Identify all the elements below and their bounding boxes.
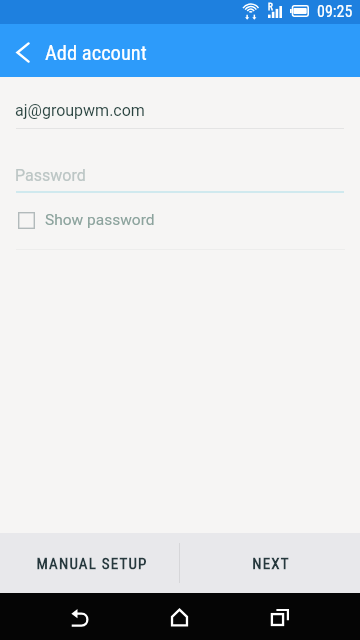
- staticText: Add account: [45, 41, 147, 65]
- button[interactable]: Home: [139, 593, 220, 640]
- staticText: MANUAL SETUP: [36, 555, 148, 573]
- staticText: aj@groupwm.com: [15, 101, 145, 120]
- button[interactable]: Show password: [0, 198, 360, 242]
- button[interactable]: MANUAL SETUP: [0, 533, 179, 593]
- button[interactable]: Back: [39, 593, 120, 640]
- button[interactable]: Back: [0, 26, 45, 79]
- button[interactable]: NEXT: [180, 533, 360, 593]
- staticText: R: [268, 2, 273, 13]
- staticText: NEXT: [252, 555, 290, 573]
- staticText: 09:25: [317, 2, 353, 21]
- staticText: Password: [15, 166, 86, 185]
- staticText: Show password: [45, 211, 155, 229]
- button[interactable]: Recent apps: [239, 593, 320, 640]
